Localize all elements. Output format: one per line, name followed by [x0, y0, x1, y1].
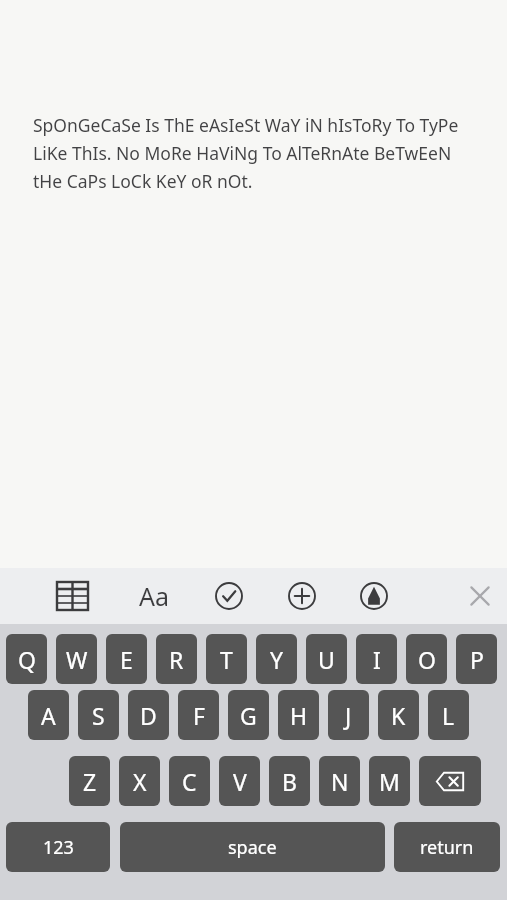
- button[interactable]: Add attachment: [276, 568, 328, 624]
- button[interactable]: W: [56, 634, 97, 684]
- staticText: SpOnGeCaSe Is ThE eAsIeSt WaY iN hIsToRy…: [33, 113, 477, 193]
- button[interactable]: S: [78, 690, 119, 740]
- button[interactable]: M: [369, 756, 410, 806]
- staticText: E: [120, 644, 133, 675]
- button[interactable]: return: [394, 822, 500, 872]
- button[interactable]: Markup: [348, 568, 400, 624]
- staticText: V: [233, 766, 247, 797]
- button[interactable]: Z: [69, 756, 110, 806]
- button[interactable]: E: [106, 634, 147, 684]
- staticText: 123: [43, 835, 74, 860]
- staticText: B: [282, 766, 297, 797]
- button[interactable]: 123: [6, 822, 110, 872]
- button[interactable]: A: [28, 690, 69, 740]
- button[interactable]: Backspace: [419, 756, 481, 806]
- button[interactable]: Aa: [126, 568, 182, 624]
- button[interactable]: K: [378, 690, 419, 740]
- staticText: N: [331, 766, 349, 797]
- button[interactable]: P: [456, 634, 497, 684]
- staticText: D: [140, 700, 157, 731]
- button[interactable]: space: [120, 822, 385, 872]
- button[interactable]: R: [156, 634, 197, 684]
- staticText: M: [379, 766, 400, 797]
- button[interactable]: U: [306, 634, 347, 684]
- button[interactable]: N: [319, 756, 360, 806]
- staticText: K: [391, 700, 406, 731]
- button[interactable]: H: [278, 690, 319, 740]
- button[interactable]: Table: [46, 568, 98, 624]
- staticText: G: [240, 700, 257, 731]
- button[interactable]: L: [428, 690, 469, 740]
- staticText: return: [420, 835, 474, 860]
- staticText: W: [66, 644, 88, 675]
- staticText: R: [169, 644, 184, 675]
- staticText: C: [182, 766, 197, 797]
- button[interactable]: X: [119, 756, 160, 806]
- staticText: O: [418, 644, 436, 675]
- staticText: A: [41, 700, 56, 731]
- button[interactable]: J: [328, 690, 369, 740]
- button[interactable]: Y: [256, 634, 297, 684]
- button[interactable]: Q: [6, 634, 47, 684]
- staticText: L: [442, 700, 455, 731]
- button[interactable]: D: [128, 690, 169, 740]
- button[interactable]: Checklist: [203, 568, 255, 624]
- staticText: I: [373, 644, 381, 675]
- staticText: U: [318, 644, 335, 675]
- staticText: S: [92, 700, 105, 731]
- button[interactable]: I: [356, 634, 397, 684]
- staticText: H: [290, 700, 308, 731]
- button[interactable]: Close keyboard: [454, 568, 506, 624]
- button[interactable]: O: [406, 634, 447, 684]
- button[interactable]: C: [169, 756, 210, 806]
- staticText: X: [133, 766, 147, 797]
- button[interactable]: B: [269, 756, 310, 806]
- button[interactable]: T: [206, 634, 247, 684]
- button[interactable]: V: [219, 756, 260, 806]
- staticText: Y: [270, 644, 284, 675]
- staticText: Z: [83, 766, 97, 797]
- staticText: F: [193, 700, 205, 731]
- button[interactable]: SpOnGeCaSe Is ThE eAsIeSt WaY iN hIsToRy…: [0, 0, 507, 568]
- staticText: J: [345, 700, 352, 731]
- staticText: T: [220, 644, 233, 675]
- button[interactable]: F: [178, 690, 219, 740]
- staticText: Q: [18, 644, 36, 675]
- staticText: space: [228, 835, 277, 860]
- button[interactable]: G: [228, 690, 269, 740]
- staticText: Aa: [139, 579, 170, 613]
- staticText: P: [470, 644, 484, 675]
